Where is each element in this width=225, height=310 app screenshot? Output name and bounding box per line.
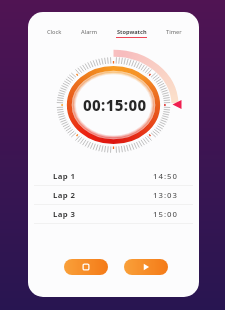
button[interactable]: Lap 1	[28, 167, 199, 185]
button[interactable]: Lap 3	[28, 205, 199, 223]
staticText: 13:03	[153, 190, 178, 201]
staticText: Alarm	[81, 28, 98, 36]
staticText: Lap 3	[53, 209, 76, 220]
button[interactable]: Stopwatch	[116, 28, 147, 38]
staticText: Lap 1	[53, 171, 76, 182]
button[interactable]: Timer	[166, 28, 182, 37]
button[interactable]: Alarm	[81, 28, 98, 37]
button[interactable]: Stop	[64, 259, 108, 275]
staticText: 00:15:00	[83, 95, 147, 115]
staticText: Timer	[166, 28, 182, 36]
button[interactable]: Clock	[47, 28, 62, 37]
staticText: 14:50	[153, 171, 178, 182]
staticText: Stopwatch	[117, 28, 147, 36]
button[interactable]: Start	[124, 259, 168, 275]
staticText: Lap 2	[53, 190, 76, 201]
staticText: 15:00	[153, 209, 178, 220]
button[interactable]: Lap 2	[28, 186, 199, 204]
staticText: Clock	[47, 28, 62, 36]
